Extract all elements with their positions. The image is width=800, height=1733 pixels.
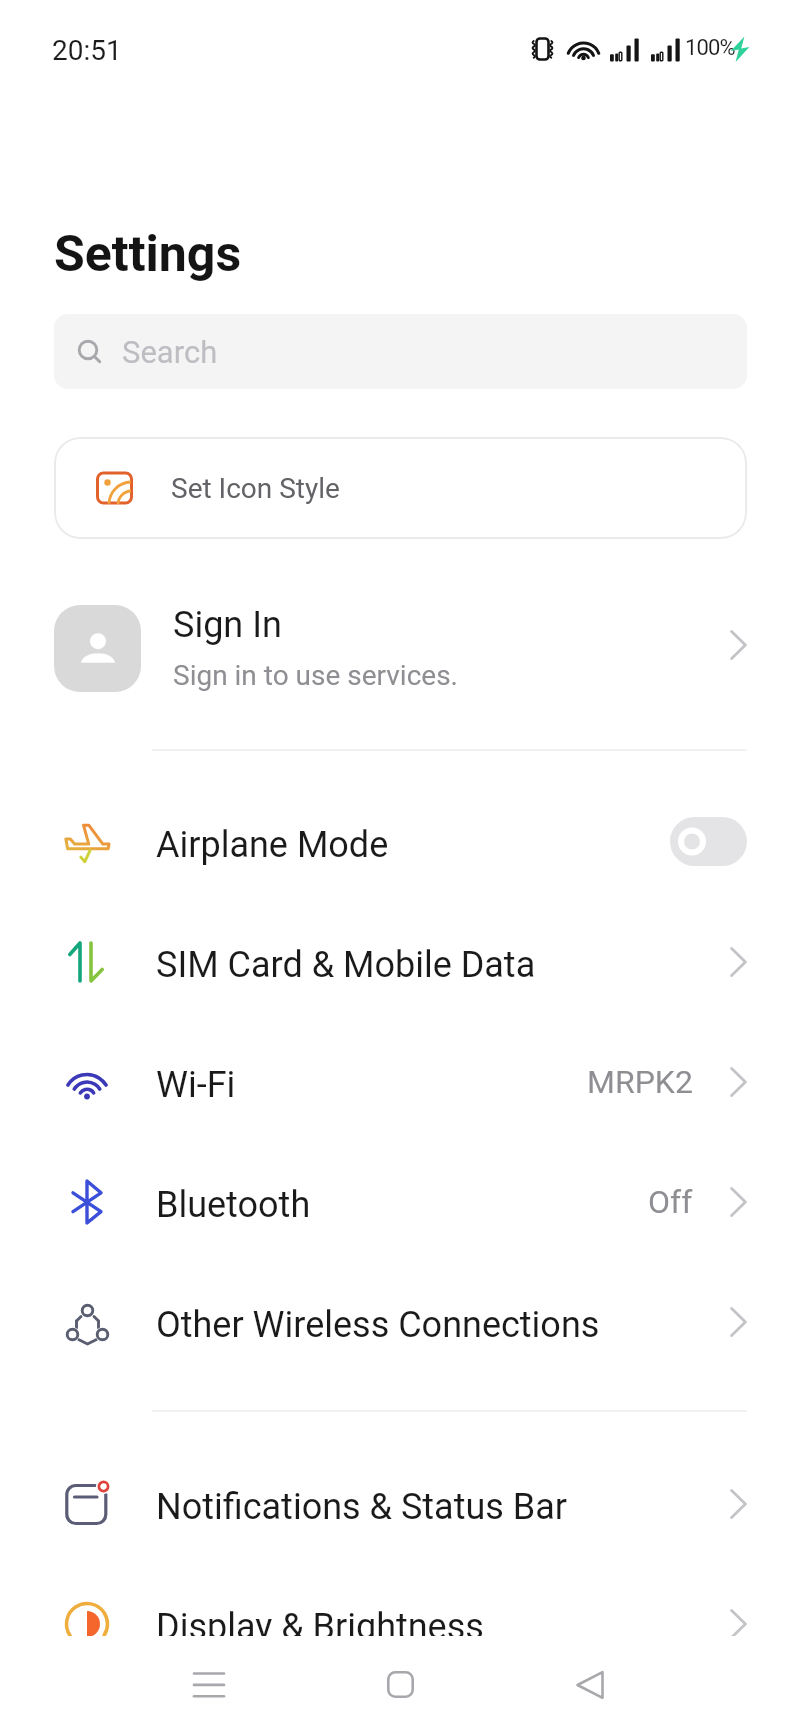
staticText: Bluetooth bbox=[156, 1184, 311, 1226]
staticText: Sign In bbox=[173, 604, 282, 646]
button[interactable]: Notifications & Status Bar bbox=[0, 1447, 800, 1567]
button[interactable]: Set Icon Style bbox=[54, 437, 747, 539]
button[interactable]: Wi-Fi bbox=[0, 1025, 800, 1145]
button[interactable]: Search bbox=[54, 314, 747, 389]
staticText: SIM Card & Mobile Data bbox=[156, 944, 536, 986]
staticText: Airplane Mode bbox=[156, 824, 389, 866]
button[interactable]: Recent apps bbox=[161, 1636, 257, 1733]
staticText: Settings bbox=[54, 225, 242, 284]
staticText: Display & Brightness bbox=[156, 1606, 484, 1648]
button[interactable]: Back bbox=[542, 1636, 638, 1733]
staticText: 100% bbox=[685, 35, 735, 61]
button[interactable]: Display & Brightness bbox=[0, 1567, 800, 1687]
button[interactable]: Sign In bbox=[0, 593, 800, 703]
staticText: Set Icon Style bbox=[171, 472, 340, 505]
staticText: Sign in to use services. bbox=[173, 659, 459, 692]
button[interactable]: SIM Card & Mobile Data bbox=[0, 905, 800, 1025]
staticText: Other Wireless Connections bbox=[156, 1304, 600, 1346]
button[interactable]: Home bbox=[352, 1636, 448, 1733]
button[interactable]: Airplane Mode bbox=[0, 785, 800, 905]
staticText: Off bbox=[648, 1183, 693, 1221]
button[interactable]: Airplane mode toggle bbox=[670, 817, 747, 866]
button[interactable]: Bluetooth bbox=[0, 1145, 800, 1265]
staticText: Search bbox=[122, 334, 218, 370]
staticText: Wi-Fi bbox=[156, 1064, 236, 1106]
button[interactable]: Other Wireless Connections bbox=[0, 1265, 800, 1385]
staticText: MRPK2 bbox=[587, 1063, 693, 1101]
staticText: Notifications & Status Bar bbox=[156, 1486, 567, 1528]
staticText: 20:51 bbox=[52, 34, 122, 67]
